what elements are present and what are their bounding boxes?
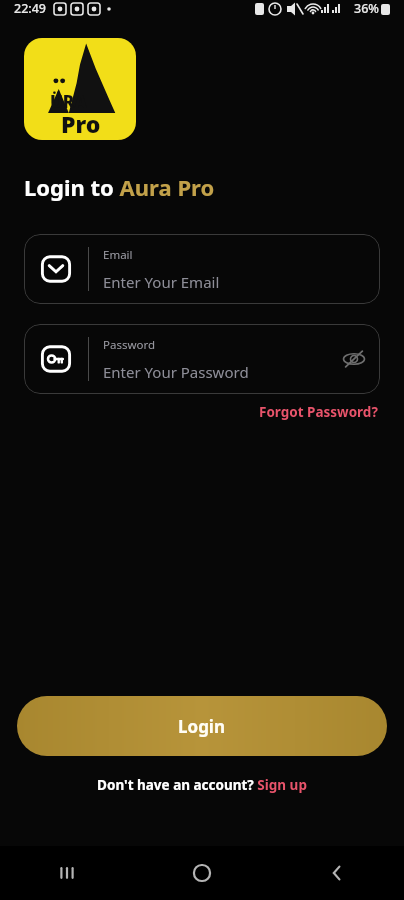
- other: Password: [39, 342, 73, 376]
- staticText: 22:49: [14, 0, 47, 17]
- staticText: ÜRA: [50, 90, 87, 113]
- staticText: Pro: [61, 108, 101, 139]
- staticText: Enter Your Password: [103, 362, 249, 382]
- button[interactable]: Forgot Password?: [257, 400, 380, 424]
- staticText: 36%: [354, 0, 379, 17]
- staticText: Email: [103, 247, 133, 263]
- staticText: Forgot Password?: [259, 403, 378, 421]
- button[interactable]: Show password: [334, 339, 374, 379]
- staticText: Login to Aura Pro: [24, 172, 215, 202]
- other: Email: [39, 252, 73, 286]
- button[interactable]: Recents: [0, 846, 134, 900]
- button[interactable]: Aura Pro logo: [24, 38, 136, 140]
- button[interactable]: Home: [134, 846, 269, 900]
- button[interactable]: Login: [17, 696, 387, 756]
- button[interactable]: Back: [269, 846, 404, 900]
- button[interactable]: Password: [24, 324, 380, 394]
- button[interactable]: Email: [24, 234, 380, 304]
- button[interactable]: Don't have an account? Sign up: [93, 774, 311, 796]
- staticText: Don't have an account? Sign up: [97, 776, 307, 794]
- staticText: Password: [103, 337, 156, 353]
- staticText: Login: [178, 715, 226, 738]
- staticText: Enter Your Email: [103, 272, 220, 292]
